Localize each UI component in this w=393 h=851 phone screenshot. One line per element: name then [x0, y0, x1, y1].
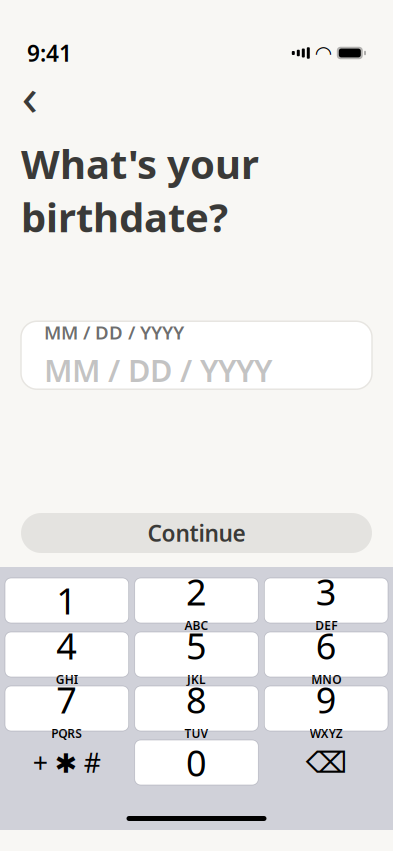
button[interactable]: Plus star pound	[5, 740, 129, 785]
staticText: ABC	[184, 617, 208, 633]
staticText: 2	[186, 568, 207, 615]
staticText: DEF	[315, 617, 337, 633]
staticText: ◠	[316, 42, 331, 64]
button[interactable]: 2	[135, 578, 258, 623]
button[interactable]: 4	[5, 632, 129, 677]
button[interactable]: Back	[8, 73, 52, 117]
button[interactable]: 5	[135, 632, 258, 677]
button[interactable]: 1	[5, 578, 129, 623]
staticText: MM / DD / YYYY	[44, 320, 184, 345]
staticText: WXYZ	[310, 725, 343, 741]
staticText: ‹	[21, 60, 38, 130]
staticText: ⌫	[306, 746, 347, 779]
staticText: GHI	[56, 671, 78, 687]
staticText: Continue	[147, 518, 245, 548]
button[interactable]: 7	[5, 686, 129, 731]
staticText: 4	[56, 622, 77, 669]
staticText: JKL	[187, 671, 206, 687]
staticText: + ✱ #	[33, 745, 101, 780]
staticText: 9:41	[27, 38, 72, 68]
button[interactable]: Continue	[21, 513, 372, 553]
button[interactable]: Delete	[264, 740, 388, 785]
staticText: 7	[56, 676, 77, 723]
button[interactable]: 3	[264, 578, 388, 623]
staticText: 8	[186, 676, 207, 723]
staticText: 9	[316, 676, 337, 723]
staticText: 5	[186, 622, 207, 669]
button[interactable]: 0	[135, 740, 258, 785]
button[interactable]: 8	[135, 686, 258, 731]
staticText: MM / DD / YYYY	[44, 350, 272, 390]
staticText: TUV	[184, 725, 208, 741]
staticText: What's your birthdate?	[21, 137, 259, 243]
staticText: 0	[186, 739, 207, 786]
button[interactable]: 6	[264, 632, 388, 677]
staticText: 6	[316, 622, 337, 669]
button[interactable]: 9	[264, 686, 388, 731]
staticText: 1	[56, 577, 77, 624]
staticText: MNO	[311, 671, 341, 687]
staticText: PQRS	[51, 725, 82, 741]
staticText: 3	[316, 568, 337, 615]
